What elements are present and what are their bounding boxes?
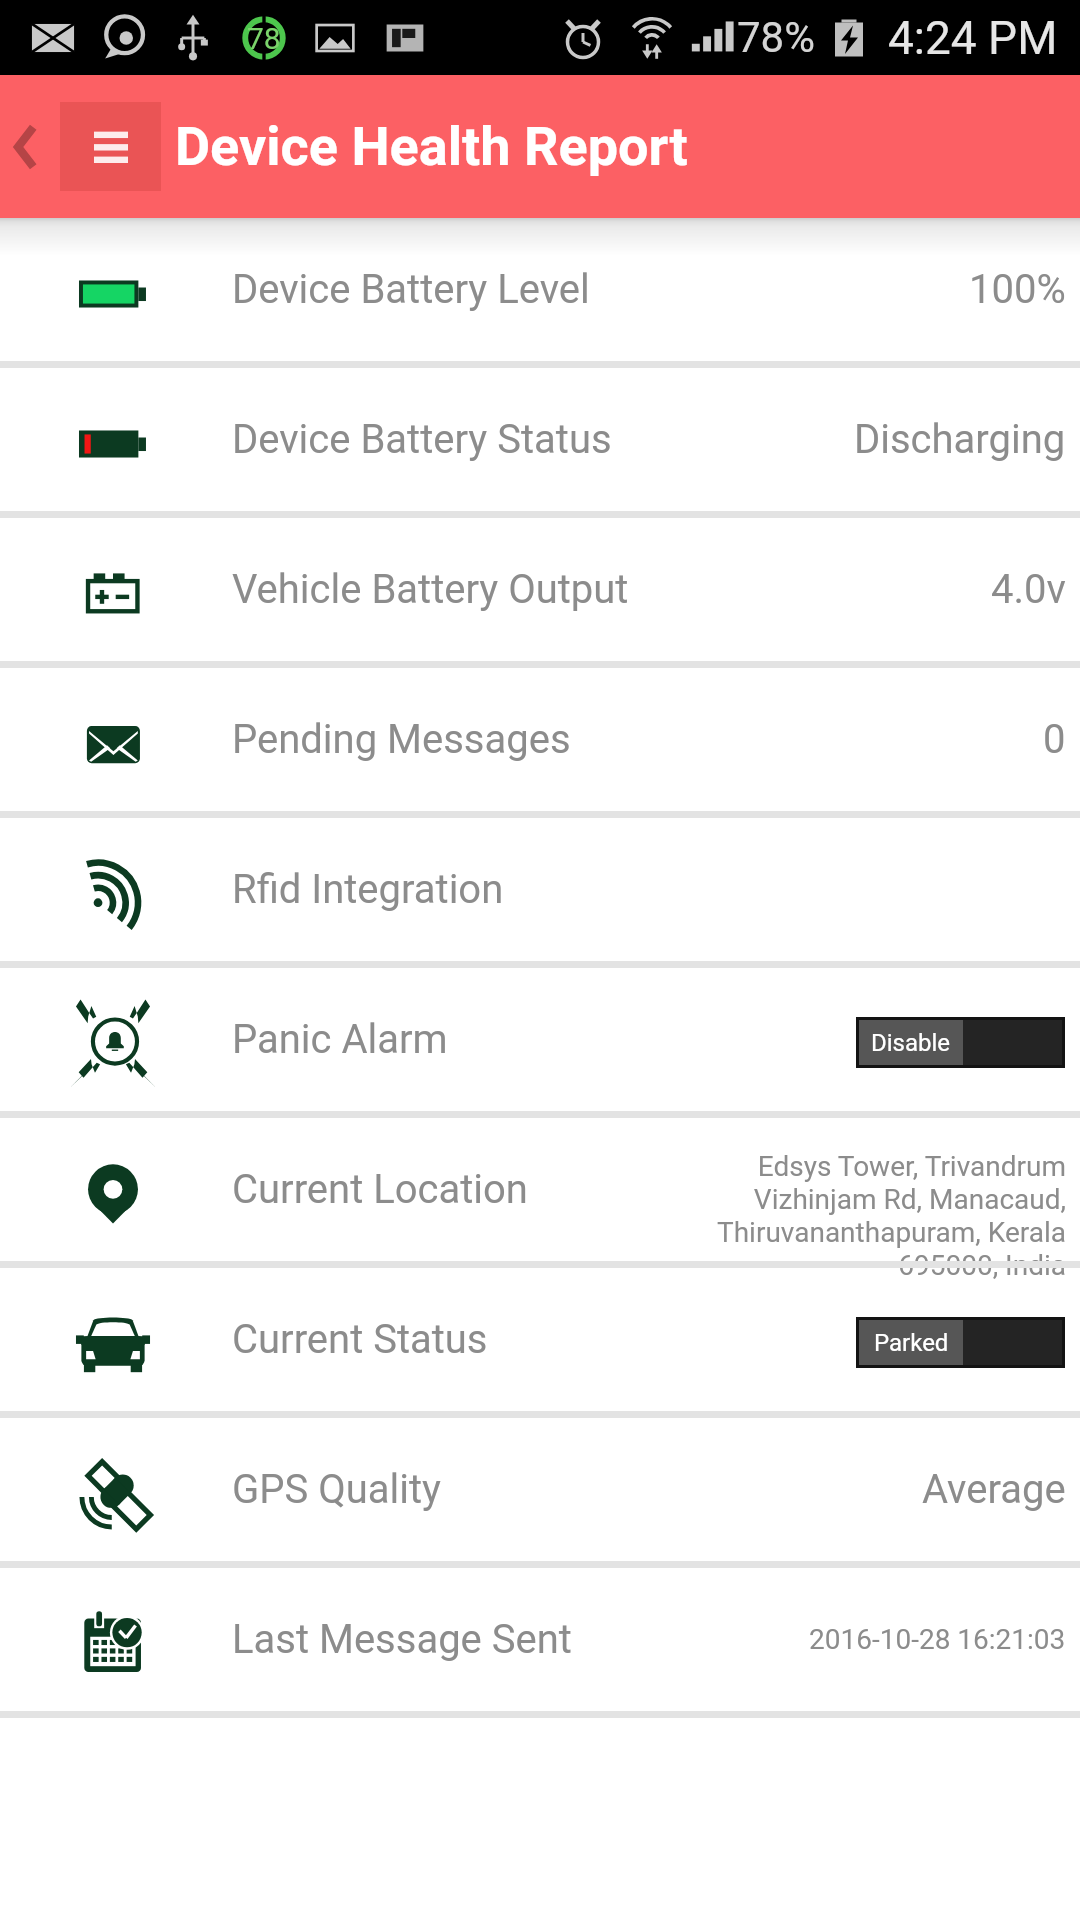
button[interactable]: Current Status: [0, 1268, 1080, 1411]
staticText: Device Health Report: [175, 115, 688, 178]
staticText: 78: [247, 21, 281, 56]
staticText: Thiruvananthapuram, Kerala: [716, 1216, 1066, 1249]
staticText: 78%: [737, 13, 815, 62]
staticText: Pending Messages: [232, 716, 571, 763]
staticText: Current Status: [232, 1316, 488, 1363]
staticText: Discharging: [854, 416, 1066, 463]
button[interactable]: Parked: [856, 1317, 1065, 1368]
button[interactable]: Rfid Integration: [0, 818, 1080, 961]
staticText: Vizhinjam Rd, Manacaud,: [753, 1183, 1066, 1216]
button[interactable]: Device Battery Status: [0, 368, 1080, 511]
button[interactable]: Device Battery Level: [0, 218, 1080, 361]
button[interactable]: Last Message Sent: [0, 1568, 1080, 1711]
staticText: 0: [1043, 716, 1066, 763]
button[interactable]: Vehicle Battery Output: [0, 518, 1080, 661]
staticText: Device Battery Level: [232, 266, 590, 313]
staticText: 4.0v: [991, 566, 1066, 613]
staticText: GPS Quality: [232, 1466, 441, 1513]
staticText: Parked: [874, 1329, 949, 1357]
staticText: Average: [922, 1466, 1066, 1513]
staticText: Last Message Sent: [232, 1616, 572, 1663]
staticText: Rfid Integration: [232, 866, 504, 913]
staticText: 4:24 PM: [888, 11, 1058, 65]
button[interactable]: GPS Quality: [0, 1418, 1080, 1561]
staticText: 695000, India: [898, 1249, 1066, 1282]
staticText: Disable: [871, 1029, 951, 1057]
button[interactable]: Disable: [856, 1017, 1065, 1068]
staticText: Vehicle Battery Output: [232, 566, 629, 613]
staticText: 2016-10-28 16:21:03: [809, 1623, 1066, 1656]
staticText: 100%: [969, 266, 1066, 313]
staticText: Edsys Tower, Trivandrum: [757, 1150, 1066, 1183]
button[interactable]: Open navigation menu: [60, 102, 161, 191]
staticText: Panic Alarm: [232, 1016, 448, 1063]
staticText: Current Location: [232, 1166, 528, 1213]
button[interactable]: Back: [0, 75, 60, 218]
button[interactable]: Panic Alarm: [0, 968, 1080, 1111]
staticText: Device Battery Status: [232, 416, 612, 463]
button[interactable]: Current Location: [0, 1118, 1080, 1261]
button[interactable]: Pending Messages: [0, 668, 1080, 811]
